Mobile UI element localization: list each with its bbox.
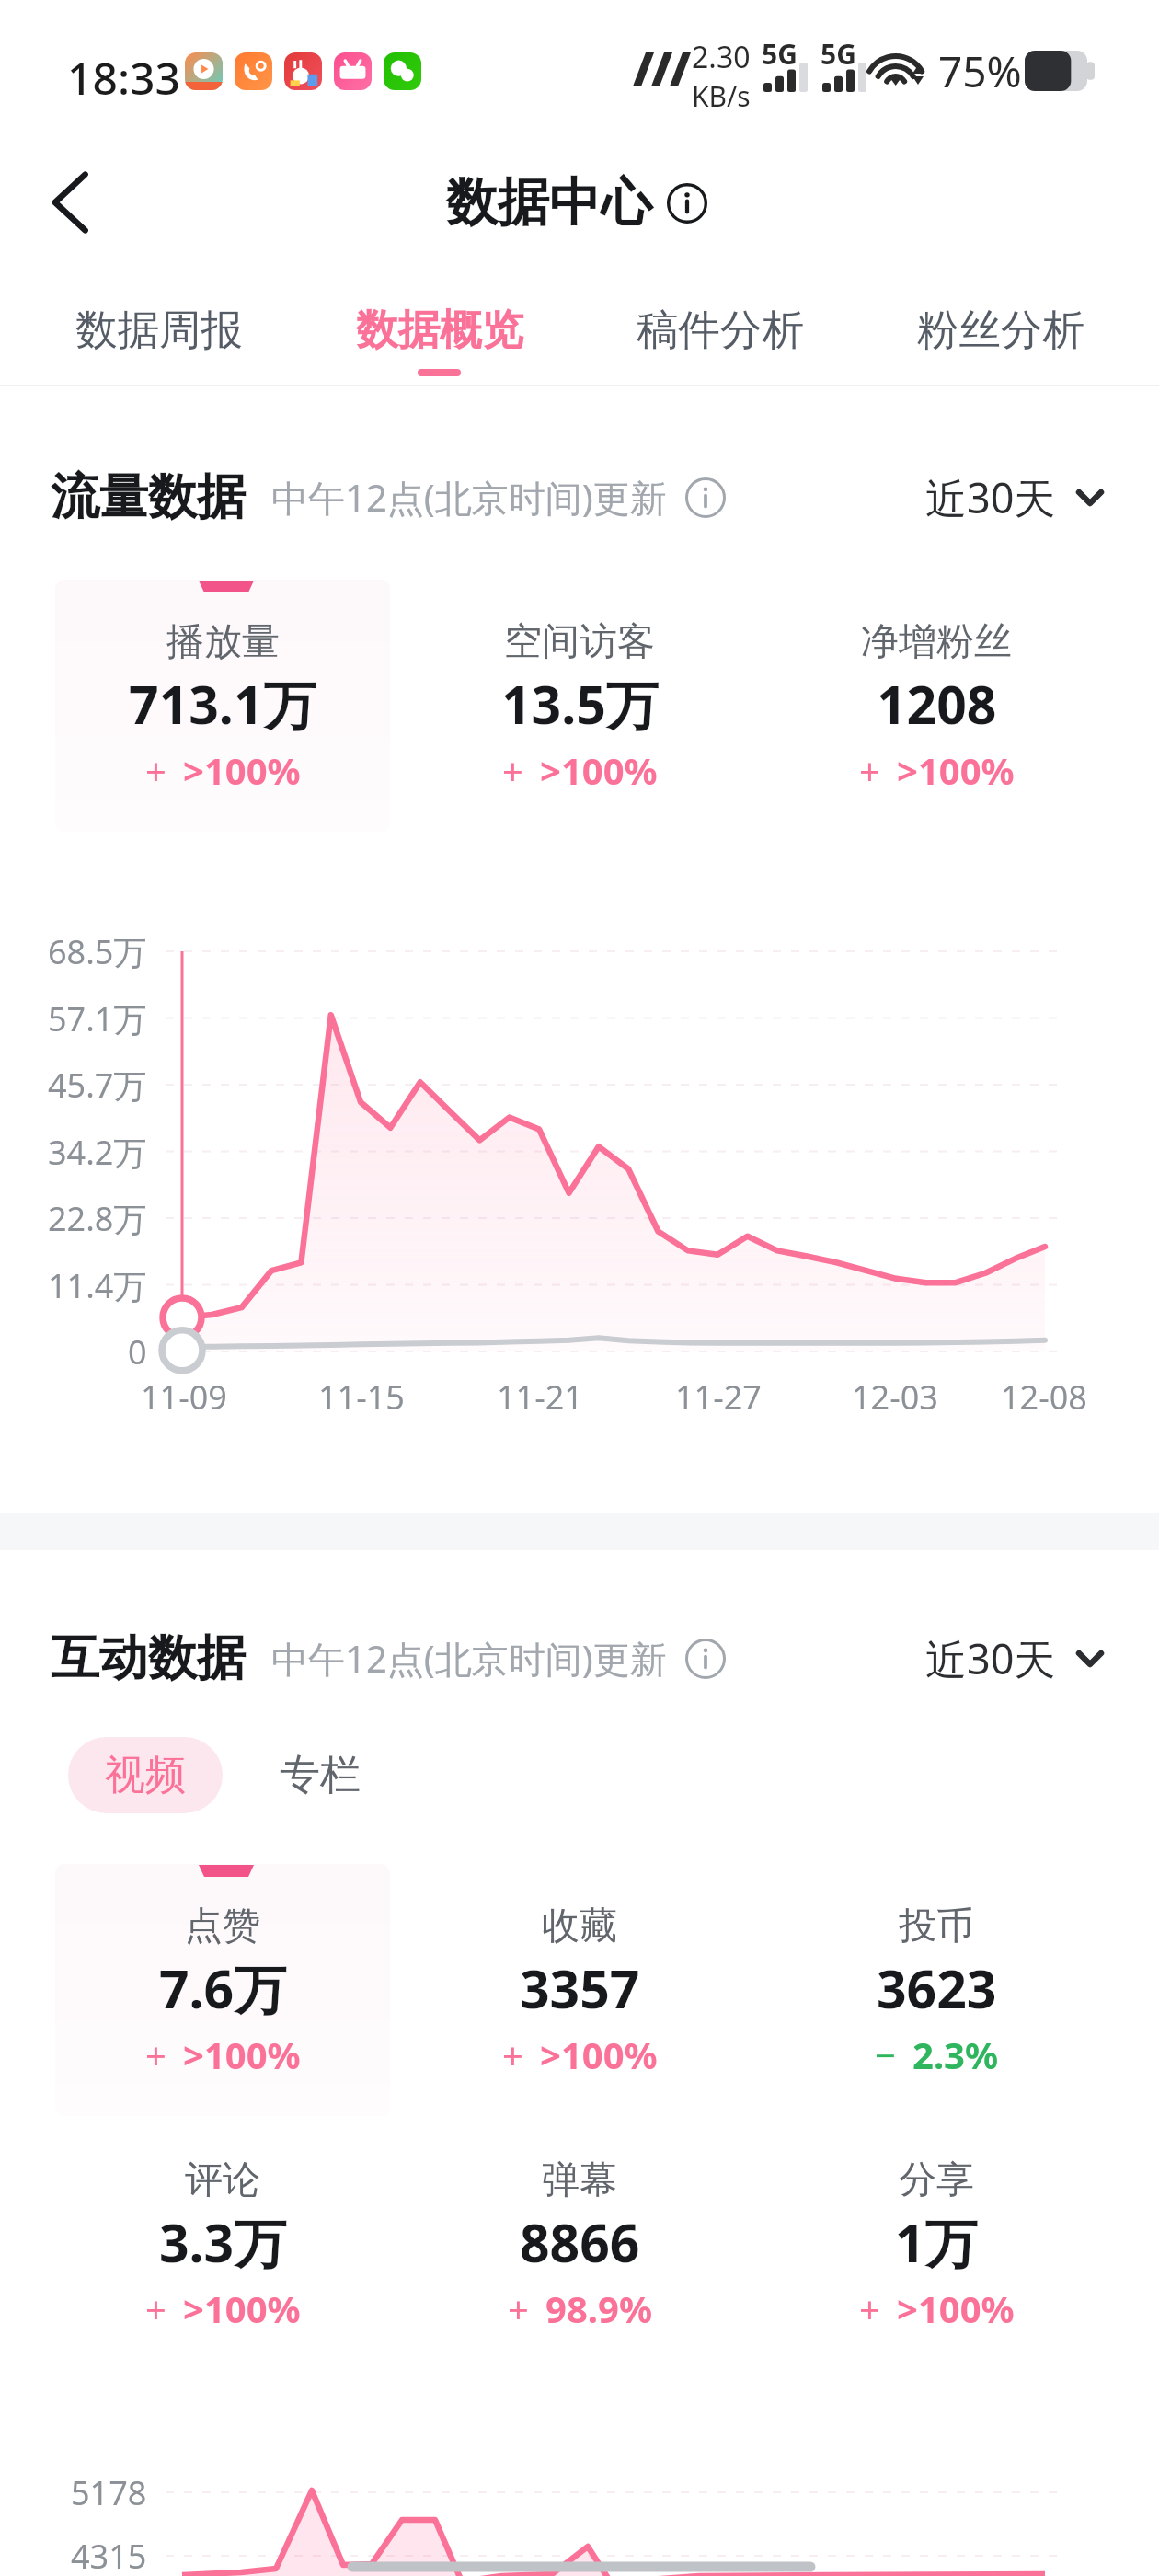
- button[interactable]: 数据周报: [18, 267, 299, 386]
- button[interactable]: 近30天: [925, 1630, 1104, 1686]
- button[interactable]: Info: [685, 1639, 726, 1679]
- staticText: 13.5万: [501, 668, 659, 740]
- staticText: 专栏: [280, 1750, 361, 1800]
- staticText: >100%: [183, 2030, 301, 2079]
- button[interactable]: Info: [685, 477, 726, 518]
- staticText: 11-27: [675, 1374, 762, 1420]
- staticText: 713.1万: [129, 668, 316, 740]
- staticText: KB/s: [692, 77, 751, 115]
- staticText: 3.3万: [159, 2206, 287, 2278]
- staticText: 评论: [185, 2156, 260, 2204]
- staticText: 8866: [520, 2206, 640, 2278]
- staticText: 近30天: [925, 469, 1056, 525]
- staticText: >100%: [897, 2283, 1015, 2333]
- staticText: 点赞: [185, 1903, 260, 1950]
- button[interactable]: 评论: [55, 2118, 390, 2370]
- staticText: 稿件分析: [637, 304, 804, 356]
- button[interactable]: 数据概览: [299, 267, 579, 386]
- staticText: 18:33: [67, 48, 180, 108]
- button[interactable]: 收藏: [412, 1864, 747, 2116]
- staticText: 近30天: [925, 1630, 1056, 1686]
- staticText: 流量数据: [51, 466, 246, 528]
- button[interactable]: 投币: [769, 1864, 1104, 2116]
- button[interactable]: 稿件分析: [579, 267, 860, 386]
- button[interactable]: 点赞: [55, 1864, 390, 2116]
- staticText: >100%: [540, 2030, 658, 2079]
- button[interactable]: 专栏: [241, 1737, 399, 1813]
- button[interactable]: 近30天: [925, 469, 1104, 525]
- staticText: 互动数据: [51, 1627, 246, 1689]
- staticText: 11-09: [141, 1374, 227, 1420]
- staticText: 68.5万: [48, 929, 147, 974]
- staticText: 数据周报: [75, 304, 243, 356]
- staticText: 57.1万: [48, 996, 147, 1041]
- staticText: +: [145, 2283, 166, 2333]
- staticText: 98.9%: [545, 2283, 652, 2333]
- staticText: 5G: [762, 35, 798, 73]
- button[interactable]: 净增粉丝: [769, 580, 1104, 832]
- staticText: −: [875, 2030, 896, 2079]
- staticText: 12-08: [1001, 1374, 1087, 1420]
- staticText: >100%: [897, 745, 1015, 795]
- staticText: 收藏: [542, 1903, 617, 1950]
- staticText: 75%: [938, 42, 1022, 100]
- staticText: 5G: [820, 35, 856, 73]
- staticText: 净增粉丝: [861, 618, 1012, 666]
- staticText: +: [859, 745, 880, 795]
- button[interactable]: 空间访客: [412, 580, 747, 832]
- staticText: 1208: [877, 668, 997, 740]
- staticText: 空间访客: [504, 618, 655, 666]
- button[interactable]: 视频: [68, 1737, 223, 1813]
- button[interactable]: 分享: [769, 2118, 1104, 2370]
- staticText: 分享: [899, 2156, 974, 2204]
- staticText: +: [145, 2030, 166, 2079]
- staticText: 45.7万: [48, 1063, 147, 1108]
- staticText: +: [859, 2283, 880, 2333]
- staticText: 11.4万: [48, 1263, 147, 1308]
- staticText: 12-03: [852, 1374, 938, 1420]
- staticText: 投币: [899, 1903, 974, 1950]
- staticText: 11-15: [318, 1374, 405, 1420]
- staticText: +: [508, 2283, 529, 2333]
- staticText: 2.30: [692, 37, 751, 77]
- staticText: +: [502, 2030, 523, 2079]
- staticText: 11-21: [497, 1374, 583, 1420]
- staticText: 数据概览: [356, 304, 523, 356]
- staticText: >100%: [183, 2283, 301, 2333]
- staticText: 播放量: [166, 618, 280, 666]
- staticText: 弹幕: [542, 2156, 617, 2204]
- button[interactable]: 播放量: [55, 580, 390, 832]
- staticText: 7.6万: [159, 1952, 287, 2024]
- staticText: 34.2万: [48, 1130, 147, 1175]
- staticText: >100%: [540, 745, 658, 795]
- staticText: +: [502, 745, 523, 795]
- staticText: 3357: [520, 1952, 640, 2024]
- staticText: 4315: [71, 2534, 147, 2576]
- staticText: >100%: [183, 745, 301, 795]
- staticText: 中午12点(北京时间)更新: [271, 472, 667, 523]
- staticText: 22.8万: [48, 1196, 147, 1241]
- button[interactable]: Info: [667, 183, 707, 224]
- staticText: 0: [128, 1329, 147, 1374]
- button[interactable]: 弹幕: [412, 2118, 747, 2370]
- button[interactable]: Back: [35, 167, 107, 238]
- staticText: 3623: [877, 1952, 997, 2024]
- staticText: 5178: [71, 2470, 147, 2515]
- staticText: 数据中心: [446, 170, 652, 236]
- button[interactable]: 粉丝分析: [860, 267, 1141, 386]
- staticText: 粉丝分析: [917, 304, 1084, 356]
- staticText: 2.3%: [912, 2030, 999, 2079]
- staticText: 1万: [895, 2206, 978, 2278]
- staticText: 视频: [105, 1750, 186, 1800]
- staticText: 中午12点(北京时间)更新: [271, 1633, 667, 1684]
- staticText: +: [145, 745, 166, 795]
